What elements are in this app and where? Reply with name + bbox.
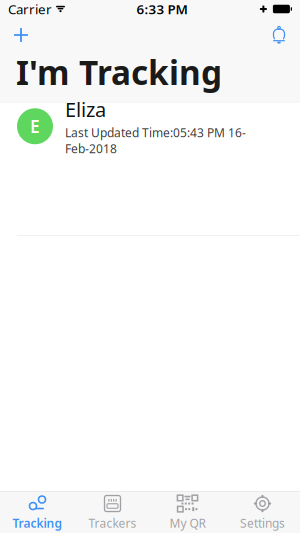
button[interactable]: Trackers — [75, 492, 150, 533]
button[interactable]: Add — [6, 23, 36, 47]
button[interactable]: Notifications — [264, 23, 294, 47]
staticText: Carrier — [8, 0, 52, 18]
staticText: 6:33 PM — [136, 0, 187, 18]
button[interactable]: My QR — [150, 492, 225, 533]
staticText: I'm Tracking — [16, 50, 222, 94]
button[interactable]: Settings — [225, 492, 300, 533]
staticText: E — [30, 115, 40, 138]
button[interactable]: E — [0, 103, 300, 150]
staticText: Settings — [240, 515, 285, 531]
button[interactable]: Tracking — [0, 492, 75, 533]
staticText: Eliza — [65, 96, 106, 123]
staticText: Trackers — [88, 515, 136, 531]
staticText: Last Updated Time:05:43 PM 16-Feb-2018 — [65, 125, 246, 156]
staticText: My QR — [169, 515, 205, 531]
staticText: Tracking — [12, 515, 62, 531]
